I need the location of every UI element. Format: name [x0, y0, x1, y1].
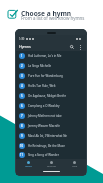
- button[interactable]: 2: [16, 61, 86, 71]
- staticText: Complong a O Weakley: [28, 104, 60, 108]
- staticText: Johnny Methren not take: [28, 114, 62, 118]
- staticText: Pure Fun for Wanderburg: [28, 74, 63, 78]
- button[interactable]: More: [63, 159, 86, 170]
- button[interactable]: More options: [76, 43, 84, 51]
- button[interactable]: Checklist: [8, 9, 18, 19]
- staticText: 6: [21, 104, 23, 108]
- button[interactable]: 4: [16, 81, 86, 91]
- staticText: 1: [21, 54, 23, 58]
- button[interactable]: 6: [16, 101, 86, 111]
- button[interactable]: 7: [16, 111, 86, 121]
- staticText: La Sings Michelle: [28, 64, 52, 68]
- staticText: 7: [21, 114, 23, 118]
- staticText: Sing a Song of Wonder: [28, 153, 59, 157]
- staticText: Hail Lutheran, Lo's in Me: [28, 54, 62, 58]
- button[interactable]: Search: [68, 43, 76, 51]
- staticText: More: [72, 165, 78, 168]
- staticText: 5: [21, 94, 23, 98]
- staticText: 8: [21, 124, 23, 128]
- button[interactable]: Favorites: [40, 159, 63, 170]
- button[interactable]: 5: [16, 91, 86, 101]
- staticText: From a list of well know hymns: [21, 15, 85, 21]
- button[interactable]: 1: [16, 51, 86, 61]
- staticText: 1:30: [19, 37, 25, 41]
- staticText: Jeremy Weaver Macnife: [28, 124, 60, 128]
- button[interactable]: 9: [16, 131, 86, 141]
- staticText: Maul Ab Ist, I Winterwhat Ne: [28, 134, 67, 138]
- button[interactable]: 8: [16, 121, 86, 131]
- staticText: 11: [20, 153, 24, 157]
- staticText: 9: [21, 134, 23, 138]
- button[interactable]: Hymns: [16, 159, 40, 170]
- staticText: 10: [20, 144, 24, 148]
- staticText: Choose a hymn: [21, 9, 72, 18]
- staticText: Hollis Tue Rule, Welt: [28, 84, 56, 88]
- staticText: Hymns: [25, 165, 32, 168]
- button[interactable]: 11: [16, 151, 86, 159]
- staticText: 4: [21, 84, 23, 88]
- button[interactable]: 10: [16, 141, 86, 151]
- staticText: Hymns: [19, 44, 31, 49]
- staticText: Favorites: [47, 165, 56, 168]
- button[interactable]: 3: [16, 71, 86, 81]
- staticText: He Reindrugs, Be the Muse: [28, 144, 65, 148]
- staticText: 2: [21, 64, 23, 68]
- staticText: 3: [21, 74, 23, 78]
- staticText: On Applause, Midget Brethr: [28, 94, 66, 98]
